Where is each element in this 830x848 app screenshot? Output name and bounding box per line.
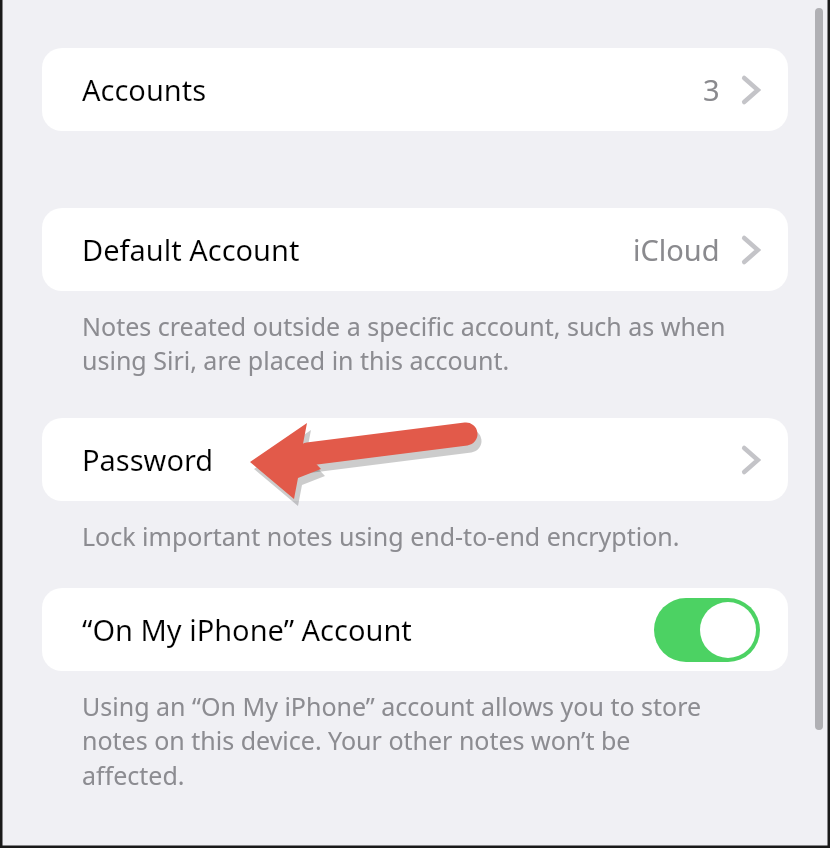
staticText: iCloud (633, 230, 720, 269)
button[interactable]: Default Account (42, 208, 788, 291)
button[interactable]: On My iPhone Account toggle (654, 598, 760, 662)
staticText: Password (82, 440, 214, 479)
staticText: Accounts (82, 70, 207, 109)
staticText: Default Account (82, 230, 300, 269)
staticText: 3 (703, 70, 720, 109)
staticText: Using an “On My iPhone” account allows y… (82, 689, 728, 793)
button[interactable]: Password (42, 418, 788, 501)
button[interactable]: Accounts (42, 48, 788, 131)
staticText: Lock important notes using end-to-end en… (82, 519, 680, 553)
staticText: Notes created outside a specific account… (82, 309, 728, 378)
staticText: “On My iPhone” Account (82, 610, 412, 649)
button[interactable]: “On My iPhone” Account (42, 588, 788, 671)
